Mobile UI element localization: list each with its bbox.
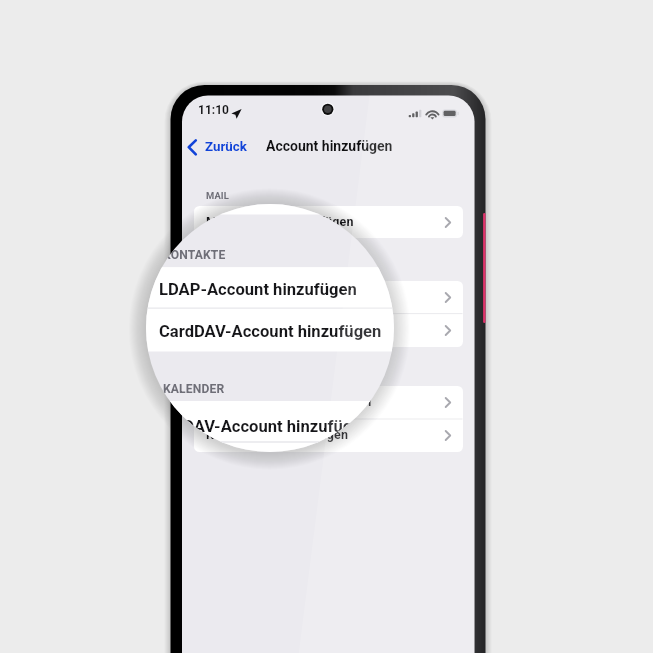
staticText: CardDAV-Account hinzufügen — [159, 322, 382, 341]
button[interactable] — [194, 419, 463, 452]
button[interactable] — [194, 281, 463, 314]
staticText: KALENDER — [163, 382, 225, 396]
staticText: LDAP-Account hinzufügen — [206, 289, 361, 304]
staticText: CardDAV-Account hinzufügen — [206, 322, 381, 337]
staticText: CalDAV-Account hinzufügen — [206, 394, 372, 409]
staticText: Zurück — [205, 139, 247, 155]
button[interactable] — [194, 314, 463, 347]
staticText: KONTAKTE — [163, 248, 226, 262]
staticText: Account hinzufügen — [266, 138, 393, 154]
button[interactable] — [194, 386, 463, 419]
staticText: CalDAV-Account hinzufügen — [159, 417, 371, 436]
staticText: 11:10 — [198, 103, 229, 117]
staticText: MAIL — [206, 190, 229, 201]
staticText: KONTAKTE — [206, 265, 255, 276]
staticText: Mail-Account hinzufügen — [206, 214, 354, 229]
button[interactable]: Zurück — [188, 135, 250, 160]
button[interactable] — [194, 206, 463, 239]
staticText: LDAP-Account hinzufügen — [159, 280, 357, 299]
staticText: Kalenderabo hinzufügen — [206, 427, 349, 442]
